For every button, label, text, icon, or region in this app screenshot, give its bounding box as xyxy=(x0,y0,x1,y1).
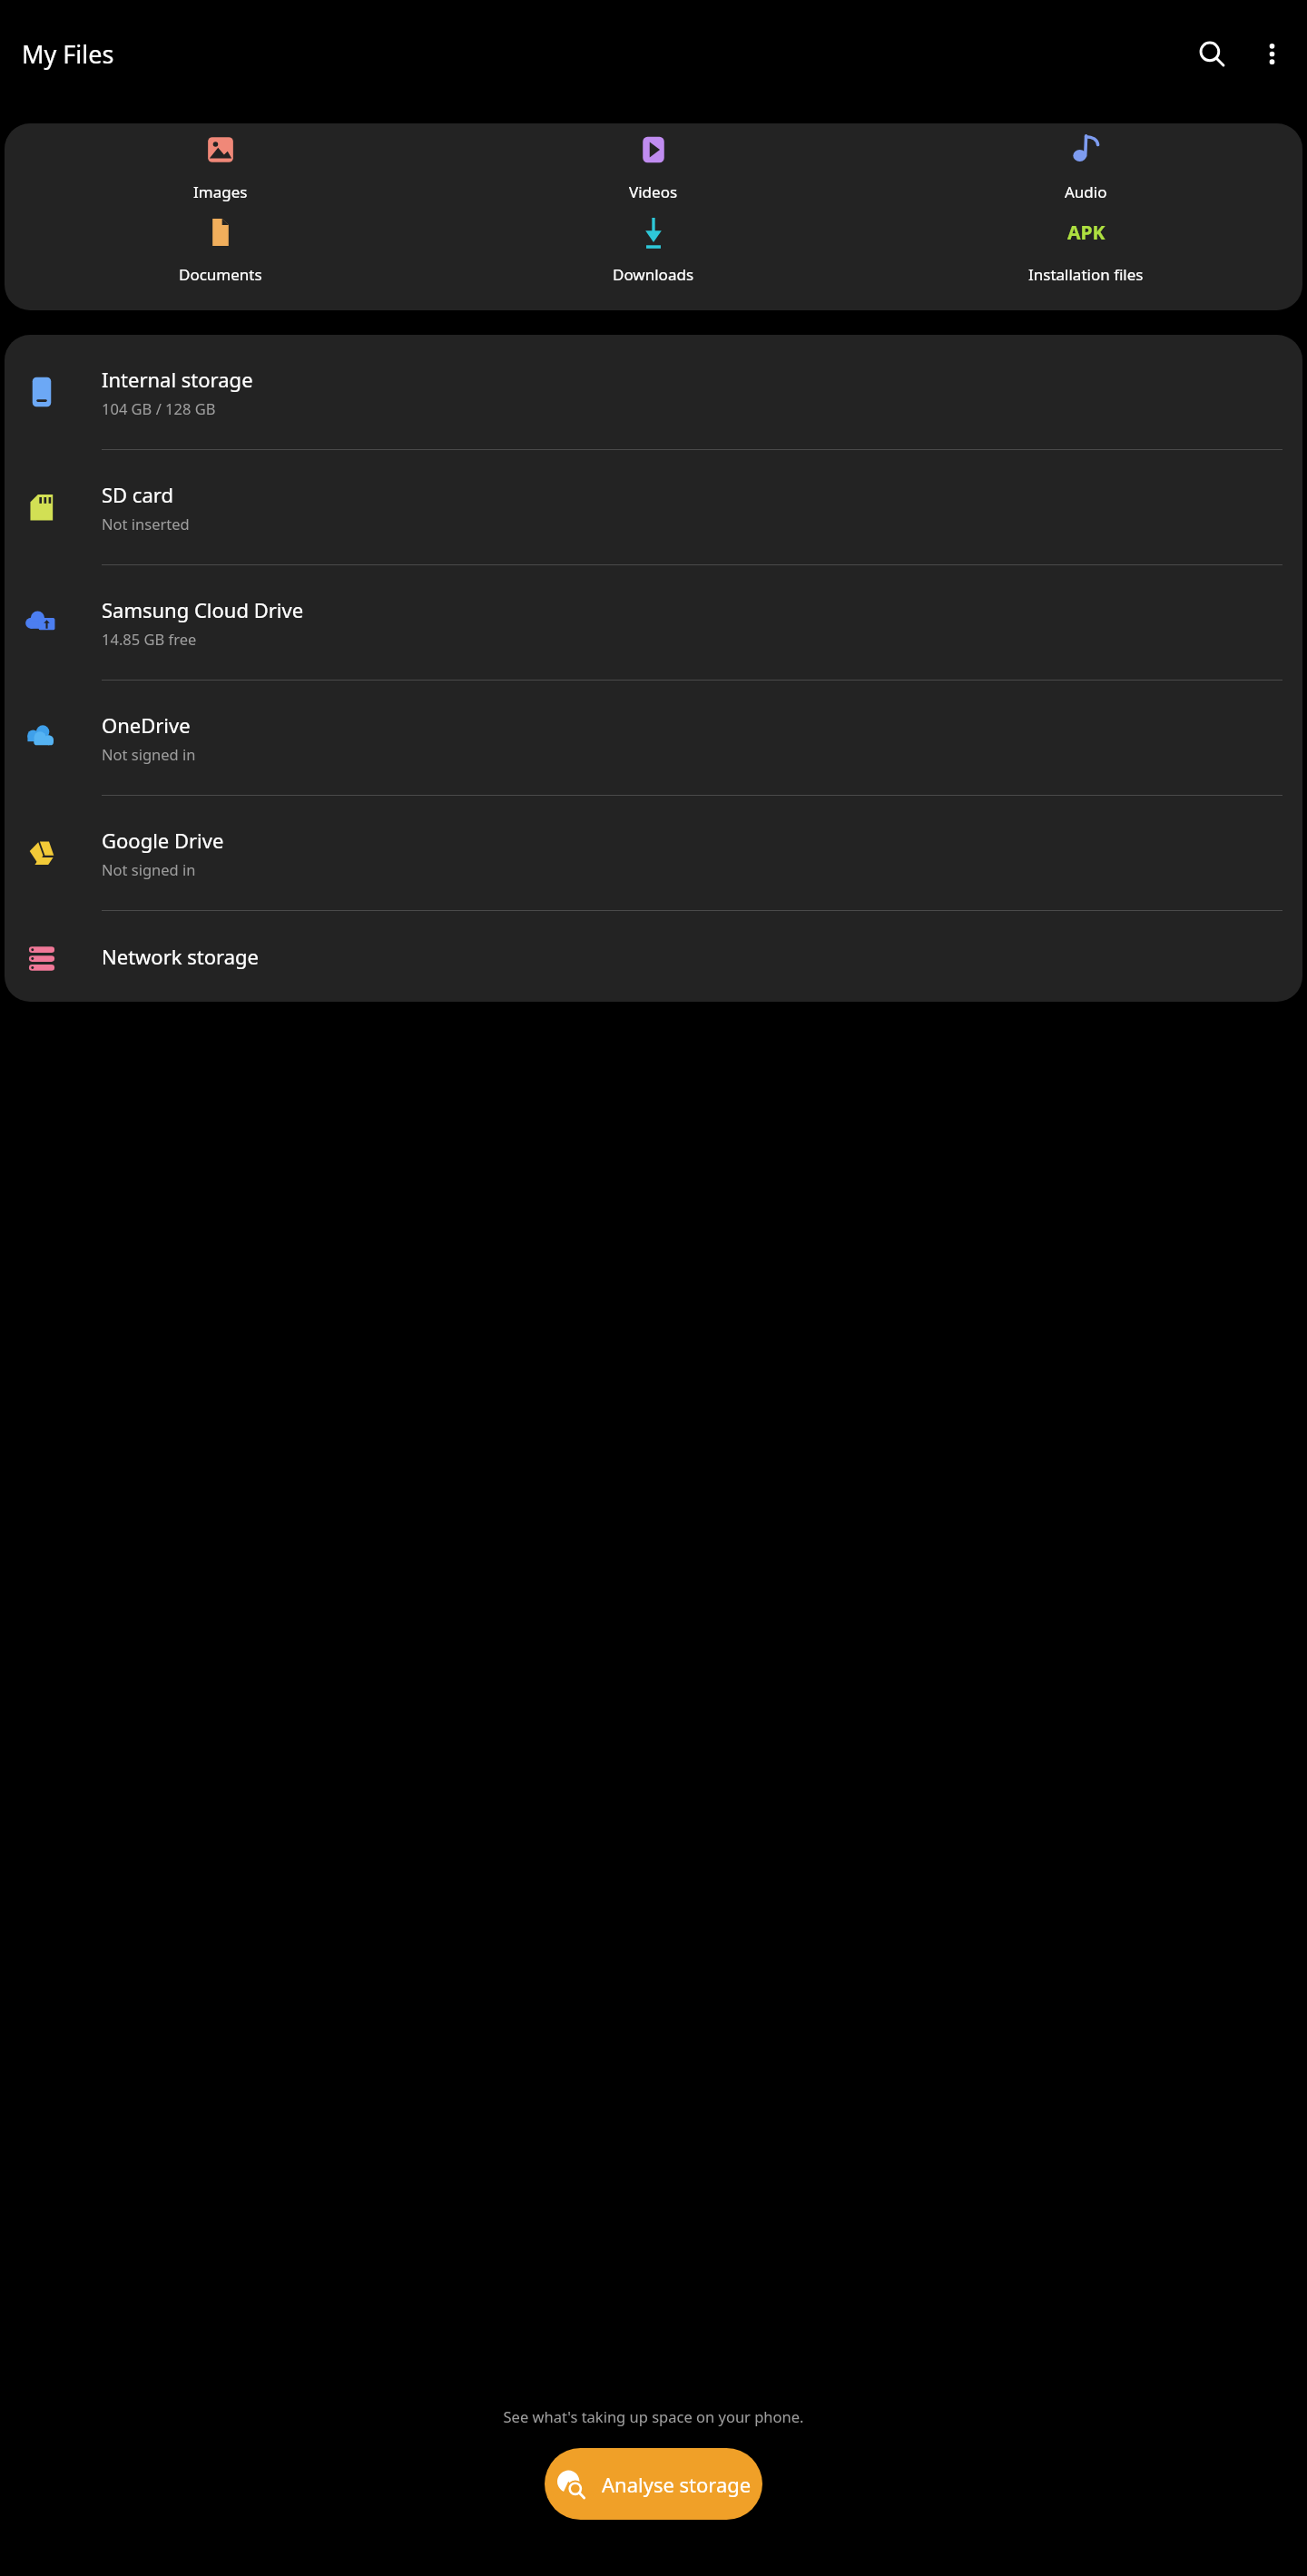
staticText: Not inserted xyxy=(102,514,190,534)
staticText: Installation files xyxy=(1028,264,1144,285)
button[interactable]: Analyse storage xyxy=(545,2448,762,2520)
button[interactable]: OneDrive xyxy=(5,681,1302,795)
button[interactable]: Samsung Cloud Drive xyxy=(5,565,1302,680)
button[interactable]: Documents xyxy=(5,208,437,290)
staticText: Google Drive xyxy=(102,827,224,854)
button[interactable]: Google Drive xyxy=(5,796,1302,910)
staticText: 104 GB / 128 GB xyxy=(102,398,216,418)
staticText: Downloads xyxy=(613,264,694,285)
staticText: SD card xyxy=(102,481,173,508)
staticText: Not signed in xyxy=(102,744,196,764)
staticText: 14.85 GB free xyxy=(102,629,197,649)
button[interactable]: Downloads xyxy=(437,208,870,290)
button[interactable]: Audio xyxy=(870,125,1302,208)
staticText: Audio xyxy=(1065,181,1107,202)
button[interactable]: Search xyxy=(1185,27,1238,80)
button[interactable]: Images xyxy=(5,125,437,208)
staticText: Analyse storage xyxy=(602,2471,752,2498)
button[interactable]: Internal storage xyxy=(5,335,1302,449)
staticText: My Files xyxy=(22,37,114,71)
staticText: Documents xyxy=(179,264,262,285)
button[interactable]: More options xyxy=(1245,27,1298,80)
staticText: See what's taking up space on your phone… xyxy=(0,2406,1307,2426)
staticText: Videos xyxy=(629,181,678,202)
staticText: Not signed in xyxy=(102,859,196,879)
staticText: OneDrive xyxy=(102,711,191,739)
button[interactable]: SD card xyxy=(5,450,1302,564)
button[interactable]: Network storage xyxy=(5,911,1302,1002)
staticText: Network storage xyxy=(102,943,259,970)
staticText: Samsung Cloud Drive xyxy=(102,596,304,623)
button[interactable]: APK xyxy=(870,208,1302,290)
staticText: APK xyxy=(1067,220,1106,246)
staticText: Images xyxy=(193,181,248,202)
staticText: Internal storage xyxy=(102,366,253,393)
button[interactable]: Videos xyxy=(437,125,870,208)
